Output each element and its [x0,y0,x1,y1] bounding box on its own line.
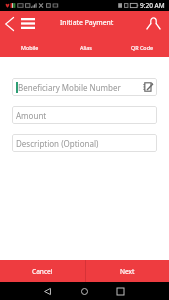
button[interactable]: Mobile [0,35,57,57]
button[interactable]: Back [1,15,18,32]
staticText: Mobile [21,44,39,51]
staticText: Next [120,267,135,276]
staticText: QR Code [131,44,153,51]
staticText: Description (Optional) [16,138,99,149]
staticText: Amount [16,110,47,121]
button[interactable]: Back [38,282,57,300]
staticText: Cancel [32,267,53,276]
button[interactable]: Account [144,13,163,32]
button[interactable]: Beneficiary Mobile Number [12,78,157,96]
button[interactable]: QR Code [113,35,169,57]
staticText: 9:20 AM [140,1,165,10]
button[interactable]: Pick contact [142,81,154,93]
button[interactable]: Amount [12,106,157,124]
button[interactable]: Alias [57,35,113,57]
staticText: Initiate Payment [60,18,114,27]
button[interactable]: Description (Optional) [12,134,157,152]
staticText: Alias [80,44,92,51]
staticText: Beneficiary Mobile Number [18,82,121,93]
button[interactable]: Menu [18,14,37,33]
button[interactable]: Next [85,260,169,282]
button[interactable]: Cancel [0,260,85,282]
button[interactable]: Home [75,282,94,300]
button[interactable]: Recents [111,282,130,300]
